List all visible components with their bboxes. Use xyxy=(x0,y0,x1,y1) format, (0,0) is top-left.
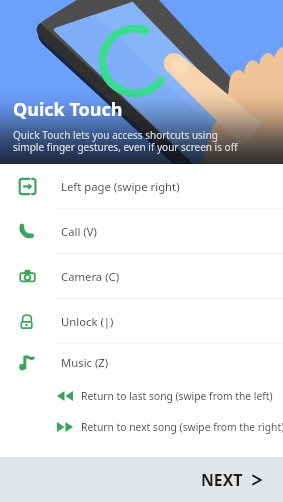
staticText: Return to last song (swipe from the left… xyxy=(81,389,273,403)
staticText: Quick Touch xyxy=(13,97,123,122)
staticText: Music (Z) xyxy=(61,355,109,370)
staticText: Left page (swipe right) xyxy=(61,179,180,194)
staticText: Return to next song (swipe from the righ… xyxy=(81,420,283,434)
button[interactable]: Camera (C) xyxy=(0,254,283,298)
button[interactable]: Call (V) xyxy=(0,209,283,253)
button[interactable]: Unlock (|) xyxy=(0,299,283,343)
staticText: NEXT xyxy=(201,469,243,491)
staticText: Unlock (|) xyxy=(61,314,114,329)
button[interactable]: Music (Z) xyxy=(0,344,283,380)
staticText: Camera (C) xyxy=(61,269,120,284)
button[interactable]: Return to next song (swipe from the righ… xyxy=(0,411,283,442)
button[interactable]: NEXT xyxy=(181,458,283,502)
button[interactable]: Left page (swipe right) xyxy=(0,164,283,208)
button[interactable]: Return to last song (swipe from the left… xyxy=(0,380,283,411)
staticText: Call (V) xyxy=(61,224,97,239)
staticText: Quick Touch lets you access shortcuts us… xyxy=(13,128,238,154)
